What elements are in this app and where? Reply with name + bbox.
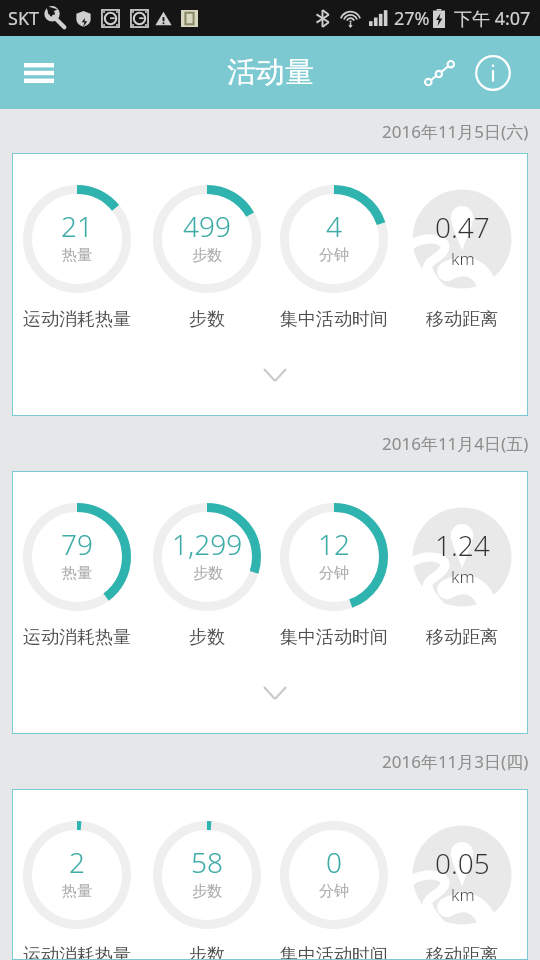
staticText: 步数: [189, 944, 225, 960]
staticText: 步数: [192, 246, 222, 265]
staticText: 1,299: [172, 525, 243, 563]
button[interactable]: Information: [465, 36, 521, 109]
staticText: 运动消耗热量: [23, 626, 131, 649]
staticText: 热量: [62, 882, 92, 901]
staticText: 集中活动时间: [280, 626, 388, 649]
button[interactable]: Open navigation menu: [15, 49, 63, 97]
staticText: 0.05: [435, 844, 490, 882]
staticText: 79: [61, 525, 93, 563]
staticText: 步数: [192, 882, 222, 901]
staticText: 12: [318, 525, 350, 563]
staticText: 步数: [189, 626, 225, 649]
staticText: 4: [326, 207, 342, 245]
staticText: 27%: [394, 6, 430, 31]
staticText: 移动距离: [426, 626, 498, 649]
staticText: 21: [61, 207, 93, 245]
staticText: 分钟: [319, 564, 349, 583]
staticText: SKT: [8, 6, 40, 31]
staticText: km: [451, 883, 475, 906]
staticText: km: [451, 565, 475, 588]
staticText: 58: [191, 843, 223, 881]
staticText: km: [451, 247, 475, 270]
staticText: 分钟: [319, 246, 349, 265]
staticText: 移动距离: [426, 944, 498, 960]
staticText: 运动消耗热量: [23, 944, 131, 960]
staticText: 1.24: [435, 526, 490, 564]
staticText: 步数: [193, 564, 223, 583]
staticText: 2: [69, 843, 85, 881]
button[interactable]: 79: [12, 471, 528, 734]
staticText: 热量: [62, 246, 92, 265]
button[interactable]: Trends chart: [412, 36, 468, 109]
staticText: 2016年11月3日(四): [382, 750, 529, 773]
staticText: 499: [183, 207, 231, 245]
staticText: 2016年11月4日(五): [382, 432, 529, 455]
staticText: 分钟: [319, 882, 349, 901]
staticText: 0.47: [435, 208, 490, 246]
staticText: 活动量: [227, 54, 314, 91]
staticText: 2016年11月5日(六): [382, 120, 529, 143]
staticText: 移动距离: [426, 308, 498, 331]
button[interactable]: 21: [12, 153, 528, 416]
staticText: 下午 4:07: [454, 6, 531, 31]
staticText: 0: [326, 843, 342, 881]
staticText: 集中活动时间: [280, 944, 388, 960]
staticText: 集中活动时间: [280, 308, 388, 331]
staticText: 热量: [62, 564, 92, 583]
button[interactable]: 2: [12, 789, 528, 960]
staticText: 运动消耗热量: [23, 308, 131, 331]
staticText: 步数: [189, 308, 225, 331]
